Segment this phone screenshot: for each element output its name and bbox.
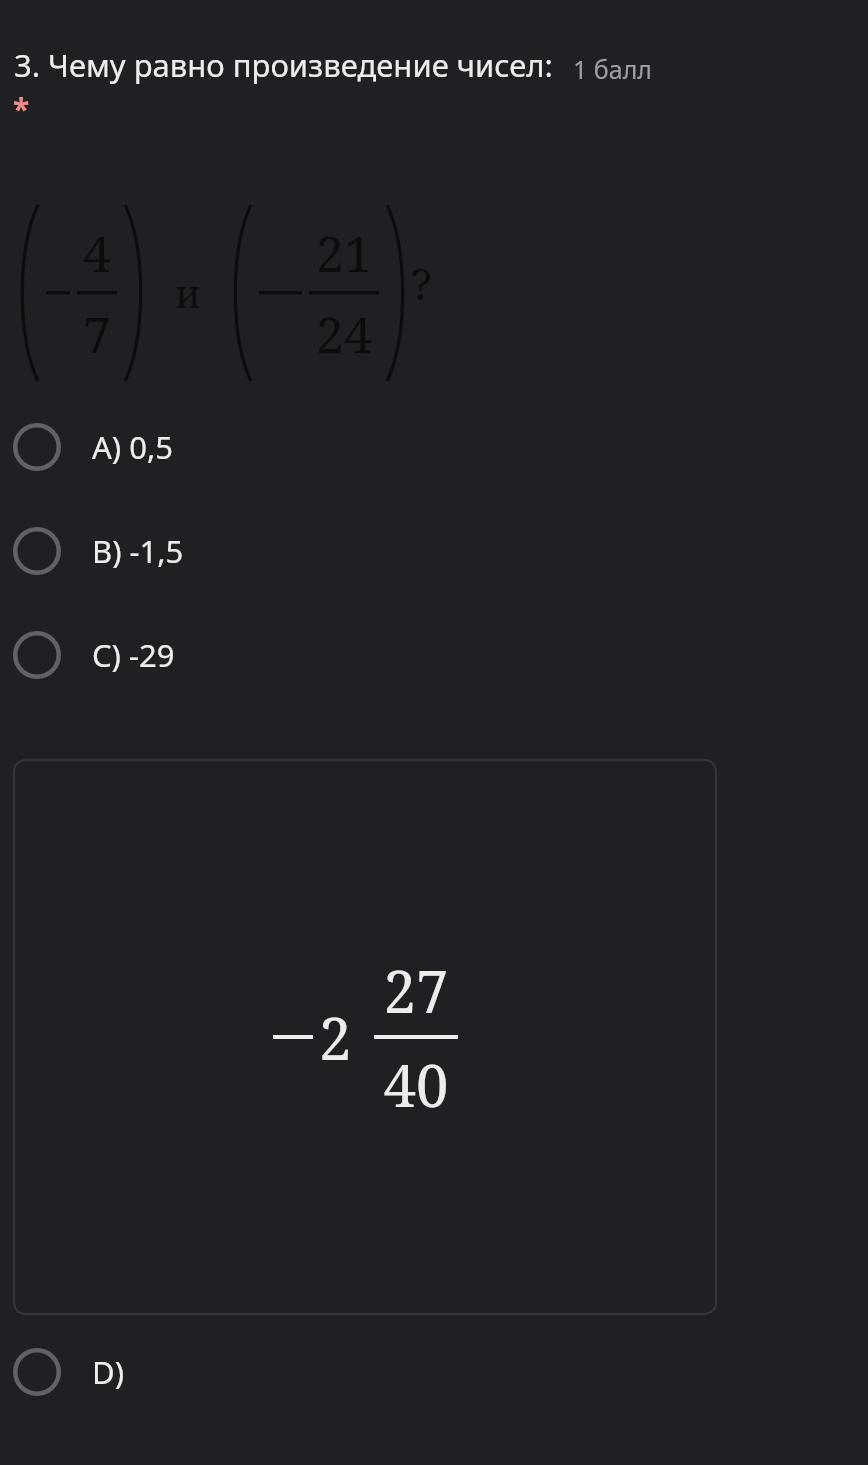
button[interactable]: A) 0,5	[0, 383, 868, 471]
staticText: 3. Чему равно произведение чисел:	[14, 44, 553, 86]
staticText: 24	[309, 300, 379, 368]
staticText: 2	[319, 998, 352, 1077]
staticText: B) -1,5	[92, 530, 184, 572]
staticText: A) 0,5	[92, 426, 173, 468]
staticText: 27	[374, 951, 458, 1030]
button[interactable]: B) -1,5	[0, 471, 868, 575]
button[interactable]: C) -29	[0, 575, 868, 679]
staticText: *	[13, 88, 30, 129]
staticText: 1 балл	[573, 52, 652, 86]
staticText: 4	[77, 219, 117, 287]
button[interactable]: Вариант ответа: изображение дроби минус …	[13, 759, 717, 1315]
staticText: C) -29	[92, 634, 175, 676]
staticText: ?	[411, 253, 432, 313]
staticText: D)	[92, 1351, 124, 1393]
staticText: и	[175, 267, 201, 319]
button[interactable]: D)	[0, 1315, 868, 1396]
staticText: 21	[309, 219, 379, 287]
staticText: 40	[374, 1045, 458, 1124]
staticText: 7	[77, 300, 117, 368]
